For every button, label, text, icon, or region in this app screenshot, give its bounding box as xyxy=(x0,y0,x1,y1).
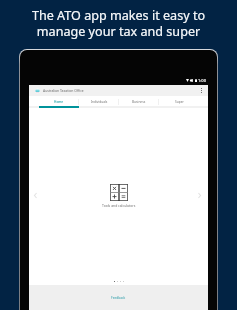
button[interactable]: Super xyxy=(159,96,199,108)
staticText: Home xyxy=(54,100,64,104)
staticText: Business xyxy=(132,100,146,104)
staticText: Australian Taxation Office xyxy=(43,88,84,93)
staticText: Individuals xyxy=(91,100,108,104)
staticText: The ATO app makes it easy to manage your… xyxy=(0,7,237,40)
staticText: 1:00 xyxy=(198,78,206,82)
button[interactable]: Home xyxy=(39,96,79,108)
button[interactable]: Business xyxy=(119,96,159,108)
button[interactable]: Next xyxy=(198,193,201,198)
button[interactable]: Previous xyxy=(34,193,37,198)
button[interactable]: More options xyxy=(201,88,202,93)
staticText: Super xyxy=(175,100,184,104)
staticText: Feedback xyxy=(111,296,126,300)
button[interactable]: Individuals xyxy=(79,96,119,108)
staticText: Tools and calculators xyxy=(102,203,136,208)
